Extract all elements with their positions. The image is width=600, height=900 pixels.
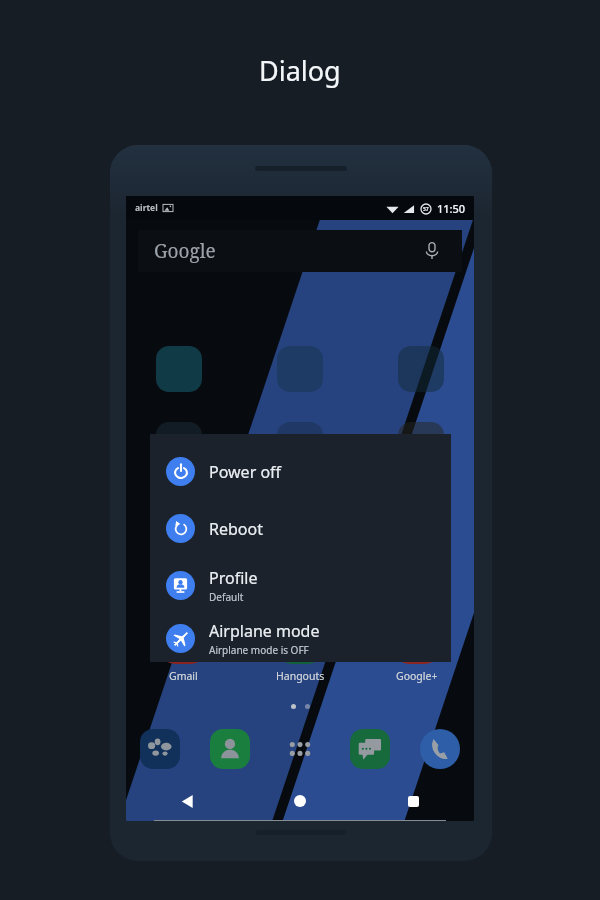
button[interactable]: Profile xyxy=(150,557,451,614)
button[interactable] xyxy=(156,422,202,468)
staticText: Google xyxy=(154,238,216,264)
staticText: Hangouts xyxy=(276,669,325,683)
button[interactable]: Back xyxy=(170,784,204,818)
button[interactable]: Google xyxy=(138,230,462,272)
staticText: airtel xyxy=(135,202,158,214)
staticText: Google+ xyxy=(396,669,438,683)
button[interactable]: Reboot xyxy=(150,500,451,557)
staticText: Power off xyxy=(209,461,282,483)
staticText: Dialog xyxy=(259,52,341,89)
button[interactable]: g xyxy=(386,618,448,683)
button[interactable]: Power off xyxy=(150,443,451,500)
staticText: 11:50 xyxy=(437,201,466,216)
button[interactable]: Hangouts xyxy=(269,618,331,683)
button[interactable]: Home xyxy=(283,784,317,818)
button[interactable]: Airplane mode xyxy=(150,614,451,662)
button[interactable]: All apps xyxy=(280,729,320,769)
button[interactable] xyxy=(277,422,323,468)
staticText: Profile xyxy=(209,567,258,589)
staticText: Gmail xyxy=(169,669,198,683)
button[interactable]: Gmail xyxy=(152,618,214,683)
staticText: 57 xyxy=(423,206,429,213)
staticText: Reboot xyxy=(209,518,263,540)
button[interactable]: Recents xyxy=(396,784,430,818)
button[interactable]: Contacts xyxy=(210,729,250,769)
button[interactable]: Browser xyxy=(140,729,180,769)
button[interactable] xyxy=(156,346,202,392)
button[interactable]: Phone xyxy=(420,729,460,769)
button[interactable] xyxy=(398,346,444,392)
button[interactable] xyxy=(277,346,323,392)
button[interactable] xyxy=(156,498,202,544)
button[interactable]: Messaging xyxy=(350,729,390,769)
staticText: Airplane mode xyxy=(209,620,320,642)
button[interactable] xyxy=(398,422,444,468)
button[interactable]: Voice search xyxy=(419,238,445,264)
staticText: Airplane mode is OFF xyxy=(209,643,309,657)
staticText: Default xyxy=(209,590,244,604)
